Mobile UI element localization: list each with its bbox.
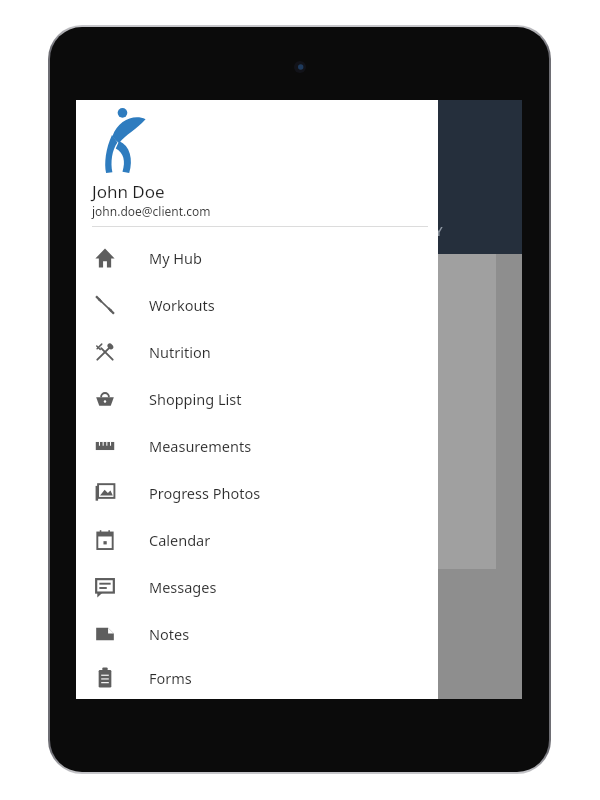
staticText: Calendar bbox=[149, 530, 211, 550]
staticText: Y bbox=[435, 222, 444, 240]
staticText: John Doe bbox=[92, 180, 165, 203]
button[interactable]: Nutrition bbox=[76, 328, 438, 375]
staticText: Measurements bbox=[149, 436, 252, 456]
staticText: Progress Photos bbox=[149, 483, 261, 503]
staticText: Notes bbox=[149, 624, 190, 644]
staticText: Shopping List bbox=[149, 389, 242, 409]
button[interactable]: Forms bbox=[76, 657, 438, 699]
staticText: Messages bbox=[149, 577, 217, 597]
staticText: My Hub bbox=[149, 248, 202, 268]
button[interactable]: Measurements bbox=[76, 422, 438, 469]
button[interactable]: Messages bbox=[76, 563, 438, 610]
staticText: Workouts bbox=[149, 295, 215, 315]
button[interactable]: Progress Photos bbox=[76, 469, 438, 516]
staticText: Forms bbox=[149, 668, 192, 688]
button[interactable]: My Hub bbox=[76, 234, 438, 281]
button[interactable]: Notes bbox=[76, 610, 438, 657]
button[interactable]: Calendar bbox=[76, 516, 438, 563]
button[interactable]: Shopping List bbox=[76, 375, 438, 422]
staticText: john.doe@client.com bbox=[92, 203, 211, 219]
staticText: Nutrition bbox=[149, 342, 211, 362]
button[interactable]: Workouts bbox=[76, 281, 438, 328]
